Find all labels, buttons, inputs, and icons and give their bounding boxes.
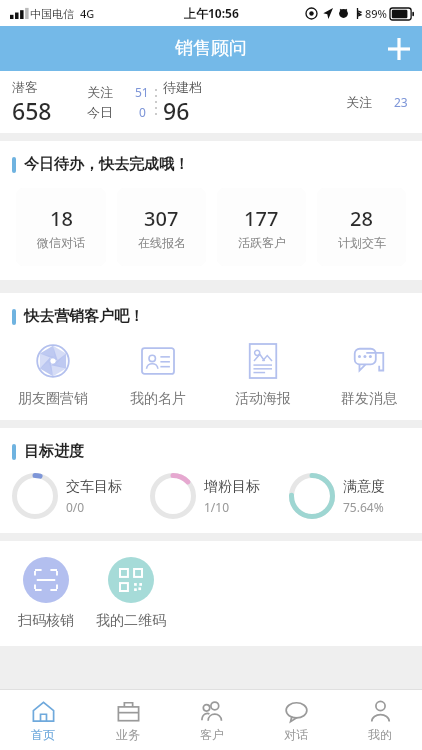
button[interactable]: 潜客 bbox=[12, 79, 52, 126]
staticText: 快去营销客户吧！ bbox=[24, 307, 144, 326]
button[interactable]: 307 bbox=[117, 188, 206, 266]
staticText: 首页 bbox=[31, 727, 55, 742]
button[interactable]: 我的二维码 bbox=[96, 557, 166, 630]
staticText: 关注 bbox=[346, 94, 372, 110]
button[interactable]: 28 bbox=[317, 188, 406, 266]
staticText: 上午10:56 bbox=[184, 5, 239, 21]
staticText: 群发消息 bbox=[341, 390, 397, 408]
staticText: 交车目标 bbox=[66, 478, 122, 496]
staticText: 28 bbox=[350, 205, 373, 232]
button[interactable]: 交车目标 bbox=[6, 473, 144, 519]
staticText: 关注 bbox=[87, 84, 113, 100]
button[interactable]: 关注 bbox=[346, 94, 408, 110]
staticText: 客户 bbox=[200, 727, 224, 742]
staticText: 0 bbox=[139, 104, 146, 120]
staticText: 307 bbox=[144, 205, 179, 232]
button[interactable]: 群发消息 bbox=[316, 342, 422, 408]
button[interactable]: 177 bbox=[217, 188, 306, 266]
staticText: 我的名片 bbox=[130, 390, 186, 408]
staticText: 销售顾问 bbox=[175, 37, 247, 60]
staticText: 我的 bbox=[368, 727, 392, 742]
button[interactable]: 待建档 bbox=[163, 79, 202, 126]
staticText: 1/10 bbox=[204, 499, 230, 515]
staticText: 4G bbox=[80, 6, 95, 21]
staticText: 我的二维码 bbox=[96, 612, 166, 630]
button[interactable]: 满意度 bbox=[283, 473, 422, 519]
staticText: 中国电信 bbox=[30, 7, 74, 21]
staticText: 对话 bbox=[284, 727, 308, 742]
button[interactable]: Add bbox=[376, 26, 422, 71]
staticText: 75.64% bbox=[343, 499, 384, 515]
staticText: 89% bbox=[365, 6, 387, 21]
staticText: 业务 bbox=[116, 727, 140, 742]
staticText: 在线报名 bbox=[138, 235, 186, 250]
button[interactable]: 扫码核销 bbox=[18, 557, 74, 630]
staticText: 微信对话 bbox=[37, 235, 85, 250]
staticText: 朋友圈营销 bbox=[18, 390, 88, 408]
button[interactable]: 活动海报 bbox=[210, 342, 316, 408]
button[interactable]: 我的 bbox=[338, 690, 422, 750]
button[interactable]: 对话 bbox=[254, 690, 338, 750]
staticText: 增粉目标 bbox=[204, 478, 260, 496]
staticText: 潜客 bbox=[12, 79, 38, 95]
staticText: 18 bbox=[50, 205, 73, 232]
staticText: 23 bbox=[394, 94, 408, 110]
staticText: 96 bbox=[163, 95, 190, 126]
staticText: 0/0 bbox=[66, 499, 85, 515]
button[interactable]: 业务 bbox=[85, 690, 170, 750]
staticText: 活跃客户 bbox=[238, 235, 286, 250]
button[interactable]: 关注 bbox=[87, 84, 149, 120]
button[interactable]: 18 bbox=[16, 188, 106, 266]
staticText: 今日待办，快去完成哦！ bbox=[24, 155, 189, 174]
staticText: 扫码核销 bbox=[18, 612, 74, 630]
staticText: 51 bbox=[135, 84, 149, 100]
button[interactable]: 首页 bbox=[0, 690, 85, 750]
staticText: 177 bbox=[244, 205, 279, 232]
staticText: 满意度 bbox=[343, 478, 385, 496]
button[interactable]: 客户 bbox=[170, 690, 254, 750]
staticText: 658 bbox=[12, 95, 52, 126]
staticText: 目标进度 bbox=[24, 442, 84, 461]
button[interactable]: 增粉目标 bbox=[144, 473, 283, 519]
button[interactable]: 朋友圈营销 bbox=[0, 342, 105, 408]
staticText: 计划交车 bbox=[338, 235, 386, 250]
button[interactable]: 我的名片 bbox=[105, 342, 210, 408]
staticText: 待建档 bbox=[163, 79, 202, 95]
staticText: 活动海报 bbox=[235, 390, 291, 408]
staticText: 今日 bbox=[87, 104, 113, 120]
